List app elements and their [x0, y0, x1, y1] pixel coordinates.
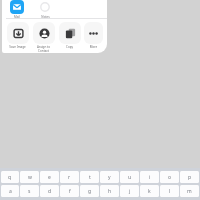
staticText: r: [68, 174, 71, 181]
staticText: m: [187, 188, 192, 195]
other: Mail: [10, 0, 24, 14]
staticText: h: [108, 188, 112, 195]
staticText: More: [84, 45, 103, 49]
staticText: j: [129, 188, 131, 195]
staticText: i: [149, 174, 151, 181]
staticText: Save Image: [6, 45, 29, 49]
button[interactable]: a: [1, 185, 19, 197]
button[interactable]: h: [100, 185, 119, 197]
button[interactable]: t: [80, 171, 99, 183]
staticText: d: [48, 188, 52, 195]
staticText: u: [128, 174, 132, 181]
button[interactable]: m: [180, 185, 199, 197]
button[interactable]: j: [120, 185, 139, 197]
button[interactable]: Copy: [58, 22, 81, 49]
button[interactable]: l: [160, 185, 179, 197]
button[interactable]: e: [40, 171, 59, 183]
button[interactable]: g: [80, 185, 99, 197]
button[interactable]: Notes: [35, 0, 55, 18]
staticText: e: [48, 174, 51, 181]
staticText: q: [8, 174, 12, 181]
staticText: g: [88, 188, 92, 195]
staticText: Assign to Contact: [32, 45, 55, 53]
button[interactable]: More: [84, 22, 103, 49]
staticText: Notes: [41, 15, 50, 18]
button[interactable]: k: [140, 185, 159, 197]
other: Notes: [38, 0, 52, 14]
staticText: Copy: [58, 45, 81, 49]
button[interactable]: r: [60, 171, 79, 183]
staticText: a: [9, 188, 12, 195]
staticText: w: [28, 174, 32, 181]
button[interactable]: o: [160, 171, 179, 183]
staticText: k: [148, 188, 151, 195]
staticText: Mail: [14, 15, 20, 18]
button[interactable]: Mail: [7, 0, 27, 18]
staticText: o: [168, 174, 172, 181]
staticText: f: [69, 188, 71, 195]
staticText: l: [169, 188, 171, 195]
button[interactable]: f: [60, 185, 79, 197]
button[interactable]: u: [120, 171, 139, 183]
button[interactable]: y: [100, 171, 119, 183]
button[interactable]: w: [20, 171, 39, 183]
button[interactable]: s: [20, 185, 39, 197]
button[interactable]: Save Image: [6, 22, 29, 49]
button[interactable]: q: [1, 171, 19, 183]
staticText: t: [89, 174, 91, 181]
staticText: y: [108, 174, 111, 181]
button[interactable]: p: [180, 171, 199, 183]
staticText: p: [188, 174, 192, 181]
button[interactable]: i: [140, 171, 159, 183]
button[interactable]: d: [40, 185, 59, 197]
staticText: s: [28, 188, 31, 195]
button[interactable]: Assign to Contact: [32, 22, 55, 53]
